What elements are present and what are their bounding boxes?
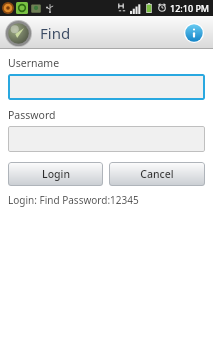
staticText: Login: Find Password:12345	[8, 193, 139, 207]
staticText: Find	[40, 23, 71, 43]
button[interactable]: Password input	[8, 126, 205, 152]
button[interactable]: Login	[8, 162, 103, 186]
staticText: Login	[42, 167, 70, 181]
button[interactable]: Info	[181, 20, 207, 46]
staticText: Username	[8, 56, 60, 70]
button[interactable]: Username input	[8, 74, 205, 100]
staticText: Cancel	[140, 167, 174, 181]
button[interactable]: App icon	[4, 19, 32, 47]
staticText: 12:10 PM	[170, 2, 210, 14]
staticText: Password	[8, 108, 56, 122]
button[interactable]: Cancel	[109, 162, 205, 186]
